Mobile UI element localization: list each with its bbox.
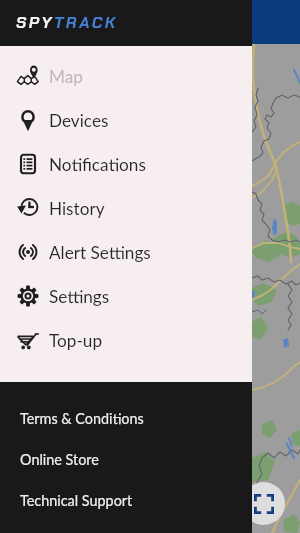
staticText: Top-up	[49, 330, 103, 351]
staticText: Online Store	[20, 451, 99, 468]
staticText: Technical Support	[20, 492, 133, 509]
staticText: History	[49, 198, 105, 219]
staticText: Alert Settings	[49, 242, 151, 263]
staticText: Terms & Conditions	[20, 410, 144, 427]
button[interactable]: Technical Support	[0, 480, 252, 521]
button[interactable]: Terms & Conditions	[0, 398, 252, 439]
button[interactable]: Alert Settings	[0, 230, 252, 274]
staticText: Notifications	[49, 154, 146, 175]
staticText: SPY	[16, 12, 54, 33]
button[interactable]: Fullscreen	[242, 482, 285, 525]
button[interactable]: Top-up	[0, 318, 252, 362]
staticText: TRACK	[54, 12, 118, 33]
button[interactable]: Settings	[0, 274, 252, 318]
button[interactable]: Online Store	[0, 439, 252, 480]
staticText: Settings	[49, 286, 110, 307]
staticText: Devices	[49, 110, 109, 131]
staticText: Map	[49, 66, 83, 87]
button[interactable]: History	[0, 186, 252, 230]
button[interactable]: Notifications	[0, 142, 252, 186]
button[interactable]: Map	[0, 54, 252, 98]
button[interactable]: Devices	[0, 98, 252, 142]
